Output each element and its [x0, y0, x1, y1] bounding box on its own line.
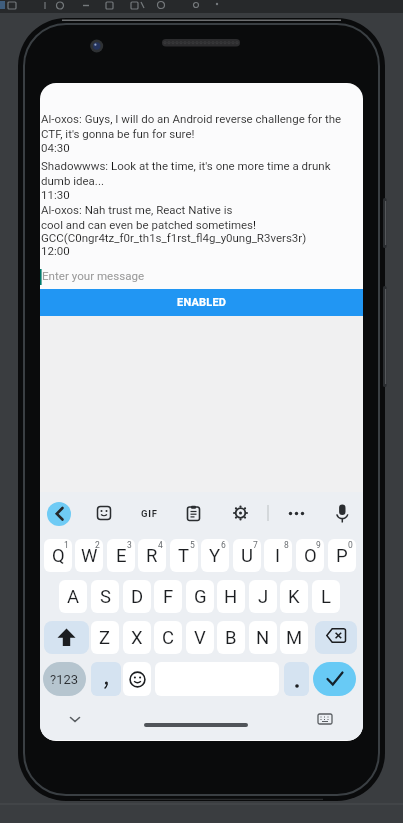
staticText: B [225, 627, 237, 649]
staticText: cool and can even be patched sometimes! [41, 218, 257, 231]
staticText: S [100, 586, 111, 608]
staticText: U [241, 545, 253, 567]
staticText: E [116, 545, 127, 567]
staticText: C [162, 627, 175, 649]
button[interactable]: N [249, 621, 277, 654]
staticText: V [194, 627, 206, 649]
button[interactable] [123, 662, 151, 696]
staticText: Y [209, 545, 221, 567]
staticText: F [163, 586, 174, 608]
button[interactable] [92, 501, 116, 525]
staticText: L [321, 586, 331, 608]
button[interactable]: T [170, 539, 198, 572]
staticText: 5 [190, 540, 195, 550]
staticText: 12:00 [41, 244, 70, 257]
staticText: dumb idea... [41, 174, 104, 187]
button[interactable]: X [123, 621, 151, 654]
staticText: Al-oxos: Nah trust me, React Native is [41, 203, 233, 216]
button[interactable] [183, 501, 207, 525]
button[interactable]: W [75, 539, 103, 572]
staticText: O [304, 545, 317, 567]
staticText: 1 [64, 540, 69, 550]
button[interactable] [313, 662, 356, 696]
staticText: 6 [221, 540, 226, 550]
button[interactable]: U [233, 539, 261, 572]
staticText: Z [99, 627, 111, 649]
button[interactable]: J [249, 580, 277, 613]
button[interactable]: R [138, 539, 166, 572]
staticText: M [286, 627, 303, 649]
button[interactable]: M [280, 621, 308, 654]
button[interactable]: O [296, 539, 324, 572]
button[interactable]: C [154, 621, 182, 654]
staticText: 7 [253, 540, 258, 550]
staticText: R [146, 545, 158, 567]
button[interactable]: Q [44, 539, 72, 572]
button[interactable] [284, 501, 308, 525]
staticText: W [81, 545, 98, 567]
button[interactable] [313, 708, 337, 732]
button[interactable]: ENABLED [40, 289, 363, 316]
button[interactable]: Enter your message [40, 266, 363, 288]
button[interactable]: L [312, 580, 340, 613]
button[interactable]: A [59, 580, 87, 613]
button[interactable] [91, 662, 121, 696]
button[interactable]: P [328, 539, 356, 572]
staticText: Q [52, 545, 65, 567]
button[interactable] [284, 662, 309, 696]
button[interactable]: B [217, 621, 245, 654]
staticText: CTF, it's gonna be fun for sure! [41, 127, 195, 140]
button[interactable] [330, 501, 354, 525]
staticText: ENABLED [177, 296, 227, 309]
staticText: 04:30 [41, 141, 70, 154]
button[interactable]: E [107, 539, 135, 572]
button[interactable]: S [91, 580, 119, 613]
staticText: X [131, 627, 143, 649]
staticText: Enter your message [42, 269, 145, 283]
staticText: ?123 [50, 672, 79, 687]
button[interactable]: F [154, 580, 182, 613]
staticText: Shadowwws: Look at the time, it's one mo… [41, 159, 331, 172]
staticText: 2 [95, 540, 100, 550]
staticText: N [256, 627, 270, 649]
button[interactable]: D [123, 580, 151, 613]
button[interactable]: Z [91, 621, 119, 654]
button[interactable]: K [280, 580, 308, 613]
staticText: P [336, 545, 348, 567]
button[interactable] [228, 501, 252, 525]
staticText: GCC(C0ngr4tz_f0r_th1s_f1rst_fl4g_y0ung_R… [41, 231, 307, 244]
button[interactable]: V [186, 621, 214, 654]
staticText: Al-oxos: Guys, I will do an Android reve… [41, 112, 342, 125]
button[interactable]: G [186, 580, 214, 613]
staticText: G [194, 586, 207, 608]
button[interactable]: Y [201, 539, 229, 572]
staticText: A [67, 586, 80, 608]
staticText: 3 [127, 540, 132, 550]
staticText: T [178, 545, 190, 567]
button[interactable] [44, 621, 89, 654]
staticText: 0 [348, 540, 353, 550]
staticText: 11:30 [41, 188, 70, 201]
staticText: K [288, 586, 300, 608]
button[interactable] [63, 708, 87, 732]
staticText: D [131, 586, 144, 608]
button[interactable] [47, 502, 71, 526]
staticText: 8 [284, 540, 289, 550]
button[interactable] [315, 621, 357, 654]
button[interactable]: ?123 [43, 662, 86, 696]
staticText: 4 [158, 540, 163, 550]
staticText: H [224, 586, 238, 608]
staticText: 9 [316, 540, 321, 550]
staticText: J [258, 586, 269, 608]
button[interactable]: H [217, 580, 245, 613]
button[interactable]: I [264, 539, 292, 572]
button[interactable]: GIF [141, 508, 158, 519]
staticText: I [275, 545, 281, 567]
